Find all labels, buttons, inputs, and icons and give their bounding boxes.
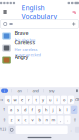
staticText: ⇧ (3, 117, 6, 122)
button[interactable]: Key (71, 116, 78, 124)
button[interactable]: w (12, 96, 18, 104)
staticText: h (45, 107, 47, 112)
staticText: Angry (14, 53, 28, 60)
button[interactable]: i (54, 96, 60, 104)
staticText: ⇧ (73, 117, 76, 122)
staticText: ✓ (73, 107, 76, 112)
button[interactable]: v (29, 116, 35, 124)
staticText: any (48, 88, 54, 93)
button[interactable]: Key (0, 96, 4, 104)
staticText: It is also has (14, 37, 35, 43)
button[interactable]: Enter (71, 106, 77, 114)
button[interactable]: m (50, 116, 56, 124)
button[interactable]: g (36, 106, 42, 114)
button[interactable]: Voice input (72, 87, 79, 94)
staticText: b (38, 117, 40, 122)
button[interactable]: f (29, 106, 35, 114)
button[interactable]: Brave (0, 30, 79, 42)
button[interactable]: Favorites (68, 6, 79, 17)
staticText: j (52, 107, 53, 112)
button[interactable]: any (43, 87, 59, 94)
button[interactable]: t (33, 96, 39, 104)
button[interactable]: and (27, 87, 43, 94)
staticText: e (21, 97, 23, 102)
staticText: k (59, 107, 61, 112)
button[interactable]: , (57, 116, 63, 124)
button[interactable]: Key (75, 96, 79, 104)
staticText: Careless (14, 39, 35, 46)
button[interactable]: . (64, 116, 70, 124)
staticText: y (42, 97, 44, 102)
button[interactable]: j (50, 106, 56, 114)
staticText: p (70, 97, 72, 102)
button[interactable]: Emoji (8, 126, 15, 134)
button[interactable]: Key (1, 116, 7, 124)
staticText: o (63, 97, 65, 102)
button[interactable]: a (8, 106, 14, 114)
staticText: . (71, 127, 72, 132)
button[interactable]: s (15, 106, 21, 114)
staticText: c (24, 117, 26, 122)
button[interactable]: n (43, 116, 49, 124)
staticText: i (56, 97, 57, 102)
button[interactable]: d (22, 106, 28, 114)
staticText: an (17, 88, 21, 93)
button[interactable]: Search (0, 18, 79, 30)
staticText: s (17, 107, 19, 112)
staticText: ⌫ (75, 97, 79, 102)
staticText: z (10, 117, 12, 122)
button[interactable]: p (68, 96, 74, 104)
button[interactable]: q (5, 96, 11, 104)
staticText: Brave (14, 29, 28, 36)
staticText: ?123 (0, 128, 6, 131)
staticText: → (0, 97, 3, 102)
staticText: g (38, 107, 40, 112)
button[interactable]: h (43, 106, 49, 114)
button[interactable]: Careless (0, 42, 79, 54)
button[interactable]: k (57, 106, 63, 114)
staticText: a (10, 107, 12, 112)
button[interactable]: z (8, 116, 14, 124)
button[interactable]: e (19, 96, 25, 104)
staticText: x (17, 117, 19, 122)
staticText: l (66, 107, 67, 112)
staticText: q (7, 97, 9, 102)
staticText: , (60, 117, 61, 122)
button[interactable]: Menu (0, 6, 10, 17)
staticText: Her careless move wrecked (14, 47, 40, 57)
button[interactable]: Suggestion (0, 87, 11, 94)
staticText: and (32, 88, 38, 93)
staticText: r (28, 97, 30, 102)
button[interactable]: b (36, 116, 42, 124)
staticText: m (51, 117, 55, 122)
staticText: v (31, 117, 33, 122)
button[interactable]: o (61, 96, 67, 104)
staticText: n (45, 117, 47, 122)
button[interactable]: u (47, 96, 53, 104)
staticText: i (4, 88, 5, 93)
staticText: ⤒ (3, 108, 5, 112)
button[interactable]: Angry (0, 54, 79, 66)
staticText: English Vocabulary (21, 3, 57, 21)
staticText: . (67, 117, 68, 122)
button[interactable]: x (15, 116, 21, 124)
button[interactable]: Symbols (0, 126, 7, 134)
staticText: d (24, 107, 26, 112)
button[interactable]: Keyboard (74, 126, 79, 134)
button[interactable]: l (64, 106, 70, 114)
button[interactable]: r (26, 96, 32, 104)
button[interactable]: c (22, 116, 28, 124)
button[interactable]: an (11, 87, 27, 94)
button[interactable]: Key (2, 106, 7, 114)
staticText: u (49, 97, 51, 102)
staticText: w (13, 97, 16, 102)
button[interactable]: y (40, 96, 46, 104)
